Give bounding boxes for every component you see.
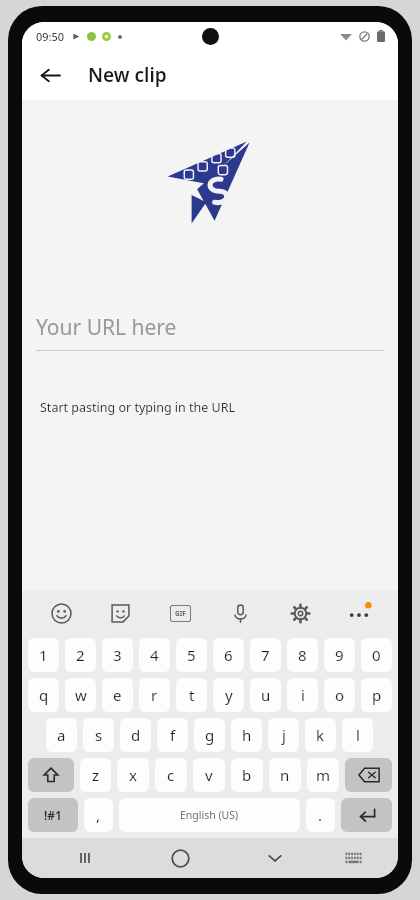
staticText: English (US)	[180, 808, 239, 822]
button[interactable]: Enter	[341, 798, 392, 832]
button[interactable]: 4	[139, 638, 170, 672]
button[interactable]: r	[139, 678, 170, 712]
button[interactable]: 3	[102, 638, 133, 672]
staticText: k	[316, 725, 325, 745]
button[interactable]: 5	[176, 638, 207, 672]
button[interactable]: d	[120, 718, 151, 752]
button[interactable]: ,	[84, 798, 113, 832]
staticText: m	[316, 765, 331, 785]
staticText: v	[205, 765, 213, 785]
button[interactable]: y	[213, 678, 244, 712]
staticText: j	[282, 725, 286, 745]
staticText: r	[151, 685, 158, 705]
button[interactable]: g	[194, 718, 225, 752]
staticText: d	[131, 725, 141, 745]
button[interactable]: 9	[324, 638, 355, 672]
button[interactable]: Home	[160, 838, 200, 878]
button[interactable]: a	[46, 718, 77, 752]
button[interactable]: b	[231, 758, 263, 792]
staticText: p	[372, 685, 382, 705]
button[interactable]: c	[155, 758, 187, 792]
button[interactable]: k	[305, 718, 336, 752]
staticText: !#1	[44, 807, 62, 823]
staticText: 9	[335, 645, 344, 665]
button[interactable]: Emoji	[40, 592, 82, 634]
staticText: u	[261, 685, 271, 705]
staticText: 0	[372, 645, 381, 665]
staticText: t	[189, 685, 195, 705]
staticText: .	[318, 805, 323, 825]
staticText: New clip	[88, 62, 167, 88]
button[interactable]: x	[117, 758, 149, 792]
button[interactable]: 1	[28, 638, 59, 672]
button[interactable]: Keyboard settings	[279, 592, 321, 634]
staticText: GIF	[175, 609, 186, 618]
staticText: y	[225, 685, 233, 705]
staticText: x	[129, 765, 137, 785]
staticText: 7	[261, 645, 270, 665]
button[interactable]: Your URL here	[36, 308, 384, 346]
button[interactable]: 0	[361, 638, 392, 672]
button[interactable]: Stickers	[99, 592, 141, 634]
button[interactable]: English (US)	[119, 798, 300, 832]
staticText: g	[205, 725, 215, 745]
button[interactable]: q	[28, 678, 59, 712]
button[interactable]: u	[250, 678, 281, 712]
staticText: 5	[187, 645, 196, 665]
staticText: o	[335, 685, 345, 705]
staticText: h	[242, 725, 252, 745]
button[interactable]: Back	[28, 53, 72, 97]
button[interactable]: 6	[213, 638, 244, 672]
button[interactable]: Switch keyboard	[333, 838, 373, 878]
button[interactable]: Shift	[28, 758, 74, 792]
staticText: e	[113, 685, 122, 705]
button[interactable]: l	[342, 718, 373, 752]
staticText: l	[356, 725, 360, 745]
button[interactable]: GIF	[159, 592, 201, 634]
button[interactable]: 2	[65, 638, 96, 672]
button[interactable]: t	[176, 678, 207, 712]
staticText: z	[92, 765, 100, 785]
button[interactable]: Voice input	[219, 592, 261, 634]
button[interactable]: Backspace	[345, 758, 392, 792]
button[interactable]: i	[287, 678, 318, 712]
staticText: 1	[39, 645, 48, 665]
staticText: f	[170, 725, 176, 745]
button[interactable]: v	[193, 758, 225, 792]
button[interactable]: n	[269, 758, 301, 792]
button[interactable]: m	[307, 758, 339, 792]
button[interactable]: h	[231, 718, 262, 752]
staticText: i	[301, 685, 305, 705]
staticText: 4	[150, 645, 159, 665]
staticText: 6	[224, 645, 233, 665]
staticText: Start pasting or typing in the URL	[40, 399, 236, 416]
staticText: 09:50	[36, 29, 65, 44]
staticText: q	[39, 685, 49, 705]
button[interactable]: w	[65, 678, 96, 712]
button[interactable]: o	[324, 678, 355, 712]
staticText: ,	[96, 805, 101, 825]
staticText: 2	[76, 645, 85, 665]
staticText: Your URL here	[36, 313, 177, 342]
button[interactable]: e	[102, 678, 133, 712]
button[interactable]: p	[361, 678, 392, 712]
button[interactable]: Hide keyboard	[255, 838, 295, 878]
staticText: w	[75, 685, 87, 705]
staticText: c	[167, 765, 175, 785]
button[interactable]: f	[157, 718, 188, 752]
button[interactable]: z	[80, 758, 111, 792]
button[interactable]: s	[83, 718, 114, 752]
staticText: 8	[298, 645, 307, 665]
button[interactable]: Recents	[65, 838, 105, 878]
button[interactable]: j	[268, 718, 299, 752]
staticText: b	[242, 765, 252, 785]
staticText: 3	[113, 645, 122, 665]
button[interactable]: .	[306, 798, 335, 832]
staticText: n	[280, 765, 290, 785]
button[interactable]: !#1	[28, 798, 78, 832]
staticText: s	[95, 725, 103, 745]
button[interactable]: 7	[250, 638, 281, 672]
button[interactable]: More options	[338, 592, 380, 634]
button[interactable]: 8	[287, 638, 318, 672]
staticText: a	[57, 725, 66, 745]
